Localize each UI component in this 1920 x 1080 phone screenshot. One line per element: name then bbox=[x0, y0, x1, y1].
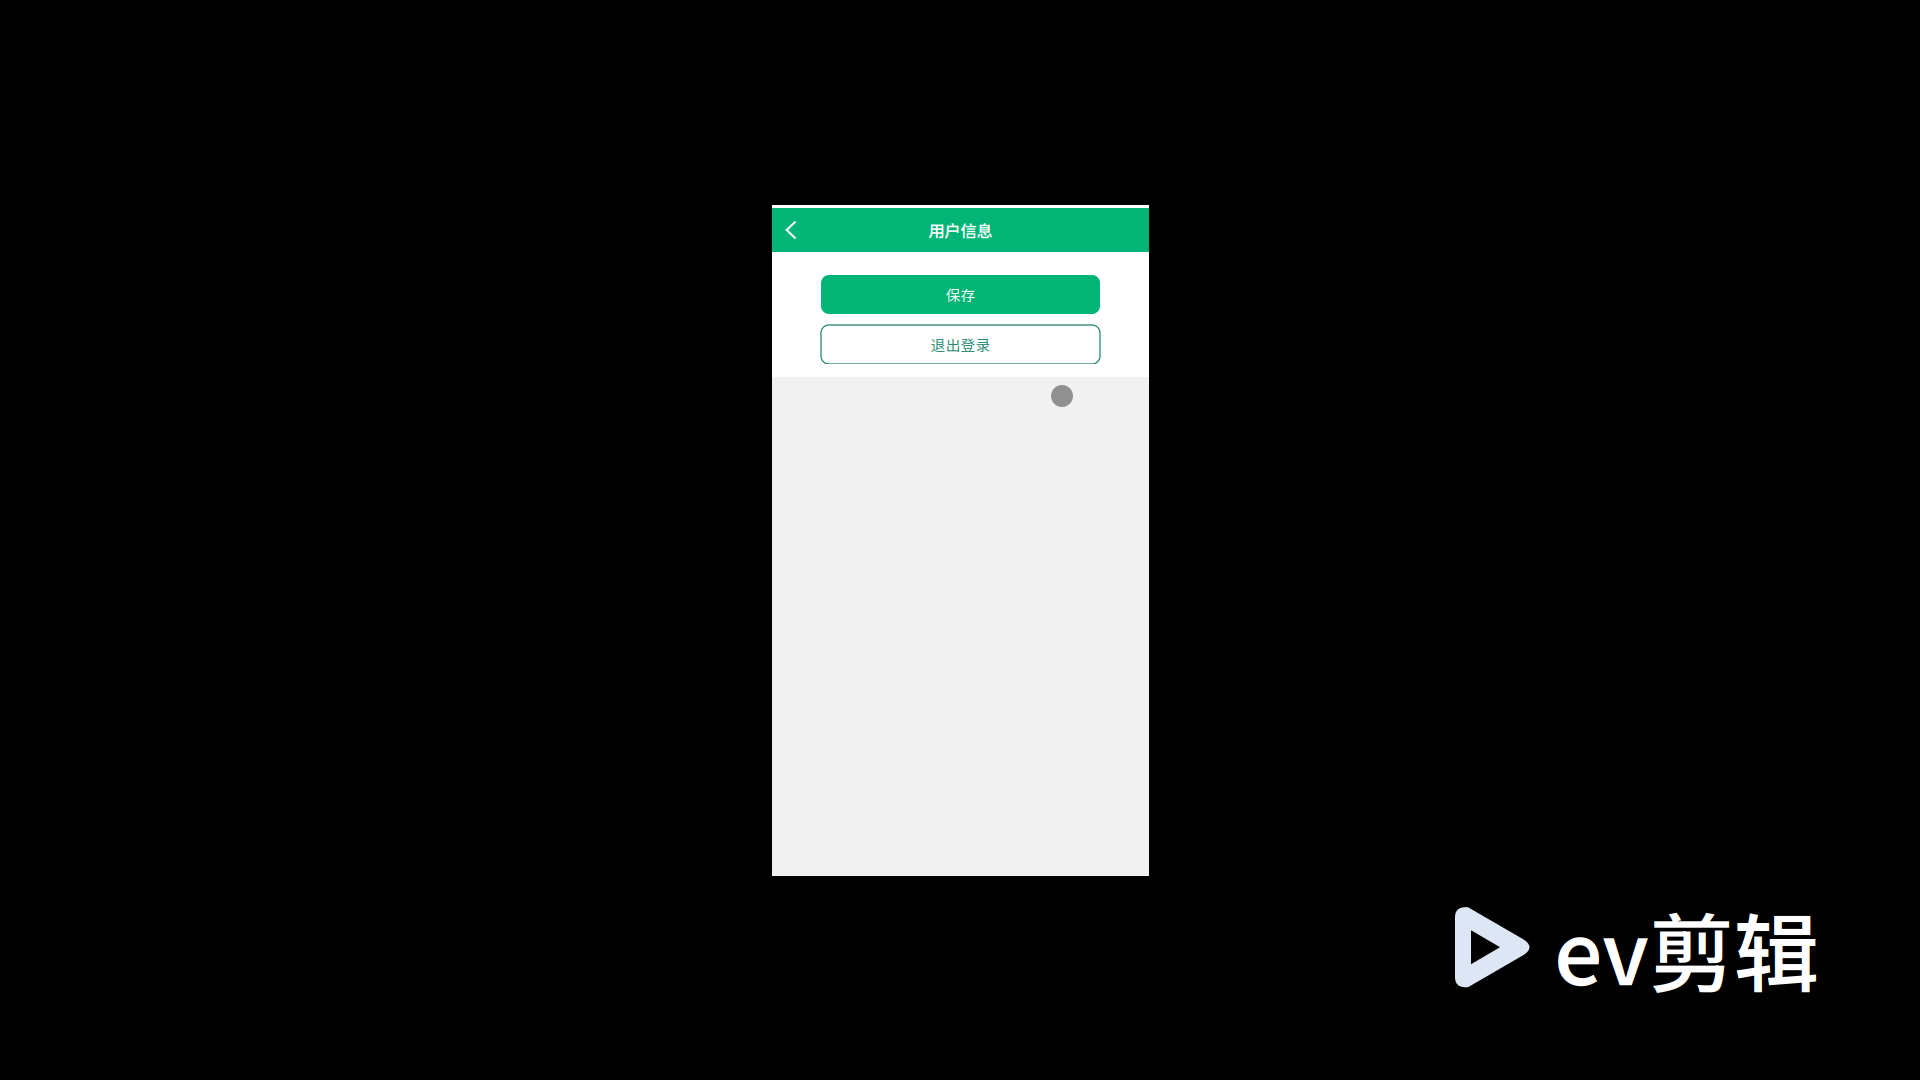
button[interactable]: 保存 bbox=[821, 275, 1100, 314]
staticText: 用户信息 bbox=[928, 218, 992, 242]
button[interactable]: 退出登录 bbox=[821, 325, 1100, 364]
button[interactable]: 返回 bbox=[772, 208, 810, 252]
staticText: ev剪辑 bbox=[1554, 886, 1819, 1010]
staticText: 保存 bbox=[945, 284, 975, 305]
staticText: 退出登录 bbox=[930, 334, 990, 355]
